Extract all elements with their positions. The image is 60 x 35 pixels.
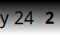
staticText: y 24 bbox=[0, 6, 34, 29]
staticText: 2 bbox=[45, 7, 54, 28]
